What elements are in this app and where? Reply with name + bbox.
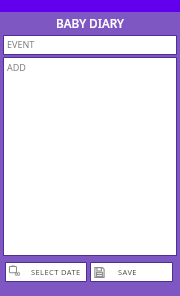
button[interactable]: EVENT xyxy=(4,36,176,54)
staticText: BABY DIARY xyxy=(56,15,124,31)
staticText: EVENT xyxy=(7,38,35,50)
other: Select date xyxy=(6,264,23,281)
button[interactable]: Select date xyxy=(6,263,86,281)
staticText: SAVE xyxy=(118,267,137,277)
staticText: SELECT DATE xyxy=(31,267,81,277)
other: Save xyxy=(91,264,108,281)
button[interactable]: Save xyxy=(91,263,172,281)
staticText: ADD xyxy=(7,61,26,73)
button[interactable]: ADD xyxy=(4,58,176,255)
